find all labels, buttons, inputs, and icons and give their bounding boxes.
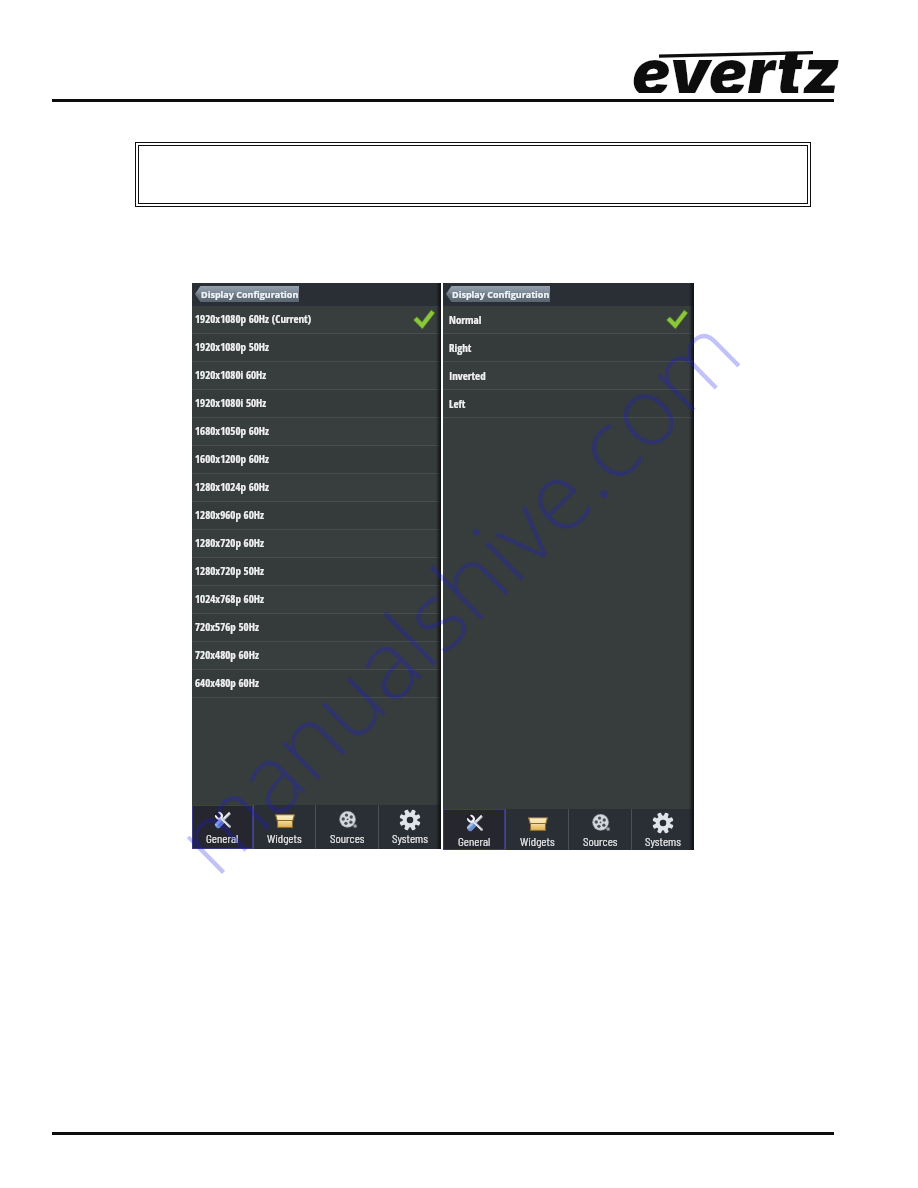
staticText: Display Configuration bbox=[452, 288, 550, 300]
staticText: Sources bbox=[583, 835, 618, 848]
button[interactable]: Systems bbox=[379, 805, 441, 849]
staticText: Inverted bbox=[449, 368, 486, 383]
staticText: Left bbox=[449, 396, 466, 411]
button[interactable]: 1024x768p 60Hz bbox=[192, 586, 441, 614]
staticText: 1600x1200p 60Hz bbox=[195, 451, 270, 466]
staticText: 1024x768p 60Hz bbox=[195, 591, 264, 606]
staticText: manualshive.com bbox=[144, 286, 766, 899]
staticText: Systems bbox=[645, 835, 681, 848]
button[interactable]: Sources bbox=[569, 809, 631, 850]
staticText: General bbox=[458, 835, 491, 848]
staticText: Sources bbox=[330, 832, 365, 845]
staticText: 720x576p 50Hz bbox=[195, 619, 259, 634]
button[interactable]: 1600x1200p 60Hz bbox=[192, 446, 441, 474]
staticText: Normal bbox=[449, 312, 482, 327]
staticText: Systems bbox=[392, 832, 428, 845]
button[interactable]: 1920x1080i 60Hz bbox=[192, 362, 441, 390]
staticText: ® bbox=[828, 82, 835, 93]
staticText: 1680x1050p 60Hz bbox=[195, 423, 270, 438]
button[interactable]: Widgets bbox=[506, 809, 568, 850]
button[interactable]: Left bbox=[443, 390, 694, 418]
button[interactable]: Sources bbox=[316, 805, 378, 849]
staticText: evertz bbox=[632, 33, 840, 93]
button[interactable]: 1920x1080p 50Hz bbox=[192, 334, 441, 362]
button[interactable]: Inverted bbox=[443, 362, 694, 390]
button[interactable]: General bbox=[193, 806, 252, 848]
staticText: 1280x720p 50Hz bbox=[195, 563, 264, 578]
staticText: General bbox=[206, 832, 239, 845]
button[interactable]: Back bbox=[195, 286, 299, 302]
staticText: 1280x1024p 60Hz bbox=[195, 479, 270, 494]
staticText: 640x480p 60Hz bbox=[195, 675, 259, 690]
button[interactable]: 720x480p 60Hz bbox=[192, 642, 441, 670]
button[interactable]: 1920x1080i 50Hz bbox=[192, 390, 441, 418]
button[interactable]: 1280x720p 60Hz bbox=[192, 530, 441, 558]
button[interactable]: 1920x1080p 60Hz (Current) bbox=[192, 306, 441, 334]
staticText: 1920x1080i 50Hz bbox=[195, 395, 267, 410]
staticText: Display Configuration bbox=[201, 288, 299, 300]
staticText: Right bbox=[449, 340, 472, 355]
staticText: 1280x720p 60Hz bbox=[195, 535, 264, 550]
staticText: 1920x1080p 50Hz bbox=[195, 339, 270, 354]
staticText: Widgets bbox=[520, 835, 555, 848]
staticText: 1280x960p 60Hz bbox=[195, 507, 264, 522]
button[interactable]: Widgets bbox=[254, 805, 315, 849]
button[interactable]: Normal bbox=[443, 306, 694, 334]
button[interactable]: Back bbox=[446, 286, 550, 302]
staticText: 1920x1080p 60Hz (Current) bbox=[195, 311, 312, 326]
button[interactable]: 1680x1050p 60Hz bbox=[192, 418, 441, 446]
staticText: Widgets bbox=[267, 832, 302, 845]
button[interactable]: Right bbox=[443, 334, 694, 362]
button[interactable]: 1280x720p 50Hz bbox=[192, 558, 441, 586]
staticText: 1920x1080i 60Hz bbox=[195, 367, 267, 382]
button[interactable]: General bbox=[444, 810, 504, 849]
staticText: 720x480p 60Hz bbox=[195, 647, 259, 662]
button[interactable]: 640x480p 60Hz bbox=[192, 670, 441, 698]
button[interactable]: 1280x960p 60Hz bbox=[192, 502, 441, 530]
button[interactable]: Systems bbox=[632, 809, 694, 850]
button[interactable]: 720x576p 50Hz bbox=[192, 614, 441, 642]
button[interactable]: 1280x1024p 60Hz bbox=[192, 474, 441, 502]
